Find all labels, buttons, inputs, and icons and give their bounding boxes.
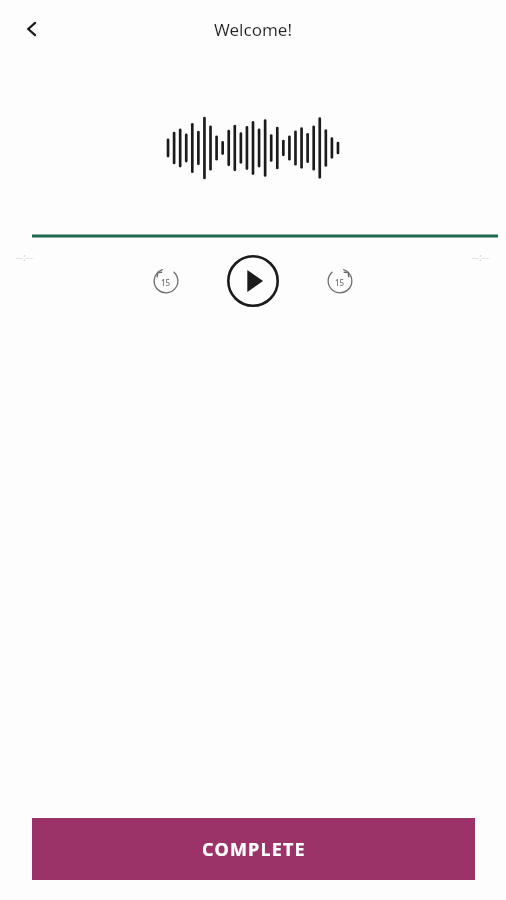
- button[interactable]: Forward 15 seconds: [312, 253, 368, 309]
- staticText: Welcome!: [214, 18, 292, 41]
- staticText: 15: [335, 277, 345, 288]
- staticText: COMPLETE: [202, 837, 306, 862]
- button[interactable]: Rewind 15 seconds: [138, 253, 194, 309]
- button[interactable]: Back: [12, 9, 52, 49]
- button[interactable]: COMPLETE: [32, 818, 475, 880]
- staticText: 15: [161, 277, 171, 288]
- staticText: --:--: [472, 249, 490, 264]
- staticText: --:--: [16, 249, 34, 264]
- button[interactable]: Play: [224, 252, 282, 310]
